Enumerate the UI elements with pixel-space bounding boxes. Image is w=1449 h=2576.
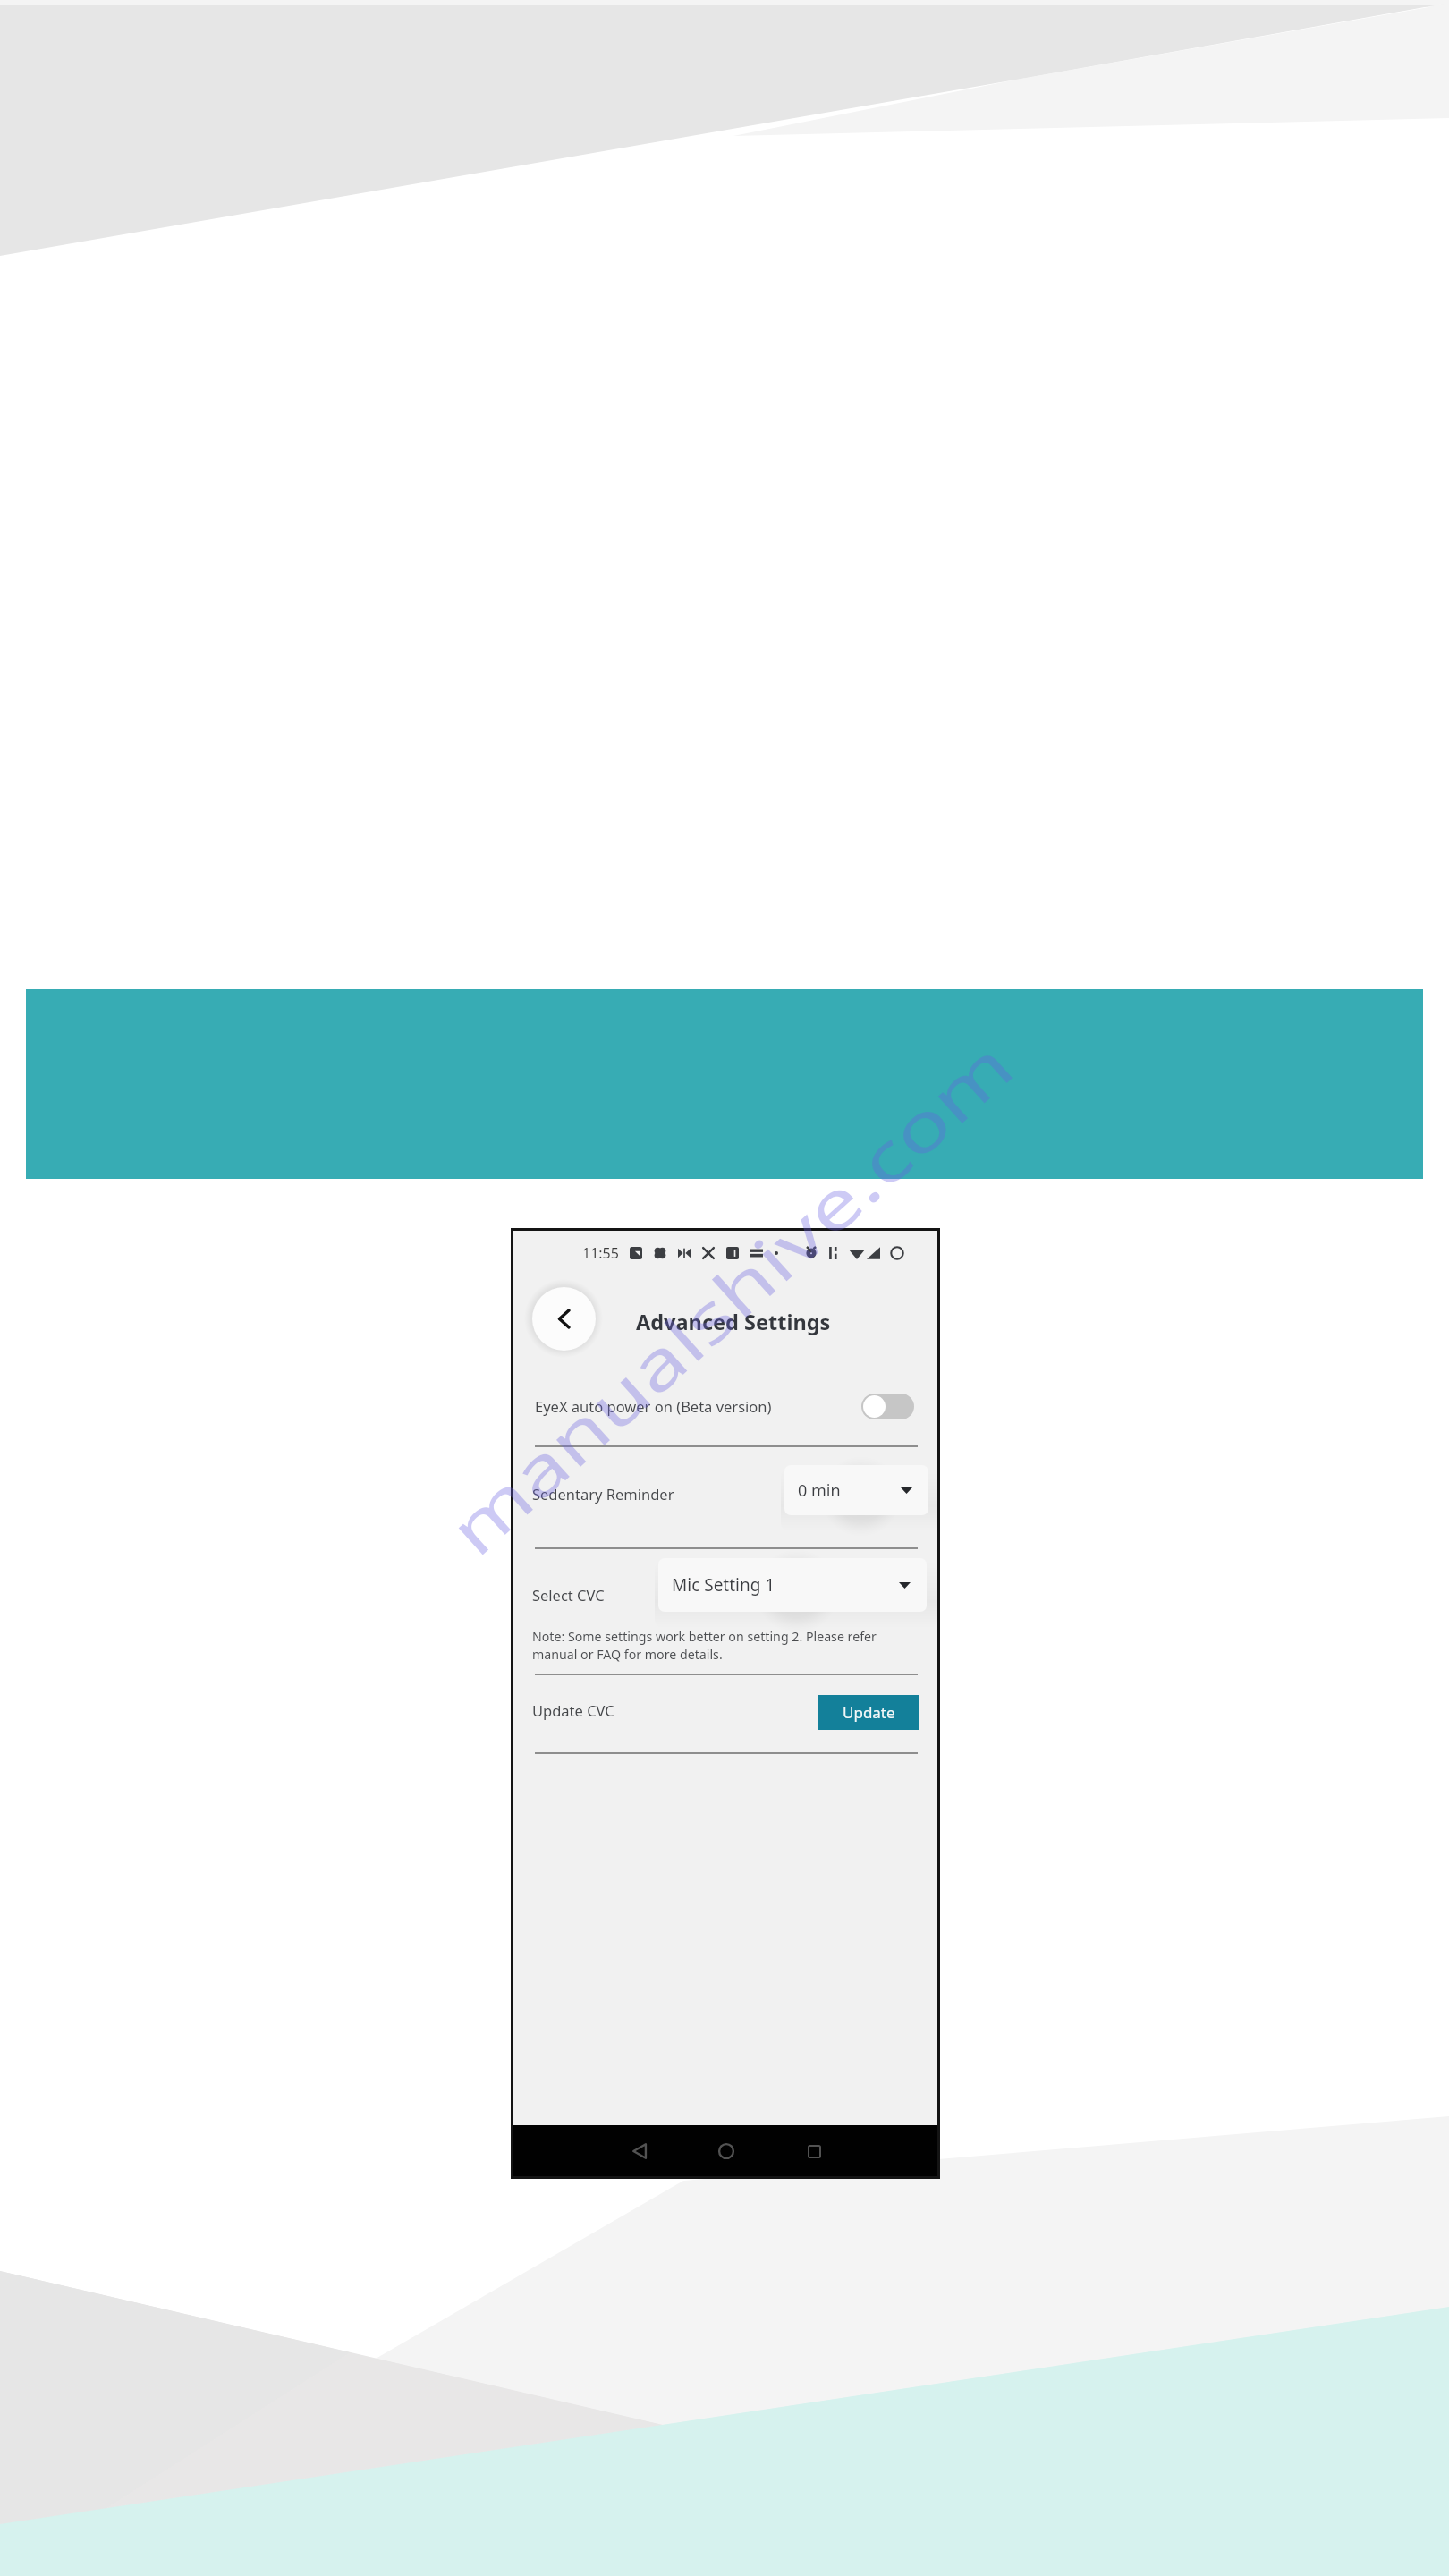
staticText: Sedentary Reminder xyxy=(532,1484,674,1504)
button[interactable]: Back xyxy=(619,2130,662,2173)
button[interactable]: EyeX auto power on (Beta version) xyxy=(513,1380,937,1432)
button[interactable]: Mic Setting 1 xyxy=(658,1558,927,1612)
staticText: Update CVC xyxy=(532,1700,614,1720)
staticText: Note: Some settings work better on setti… xyxy=(532,1628,877,1663)
staticText: Select CVC xyxy=(532,1585,605,1605)
staticText: 0 min xyxy=(798,1479,841,1502)
button[interactable]: Back xyxy=(532,1287,596,1351)
button[interactable]: Home xyxy=(705,2130,748,2173)
staticText: EyeX auto power on (Beta version) xyxy=(535,1396,772,1416)
button[interactable]: Recent apps xyxy=(792,2130,835,2173)
staticText: manualshive.com xyxy=(429,1019,1031,1575)
button[interactable]: 0 min xyxy=(784,1465,928,1515)
staticText: 11:55 xyxy=(582,1243,619,1263)
button[interactable]: EyeX auto power on toggle, off xyxy=(861,1394,914,1419)
staticText: Advanced Settings xyxy=(636,1308,831,1336)
button[interactable]: Update xyxy=(818,1695,919,1730)
staticText: Mic Setting 1 xyxy=(672,1573,775,1597)
staticText: Update xyxy=(843,1702,895,1723)
